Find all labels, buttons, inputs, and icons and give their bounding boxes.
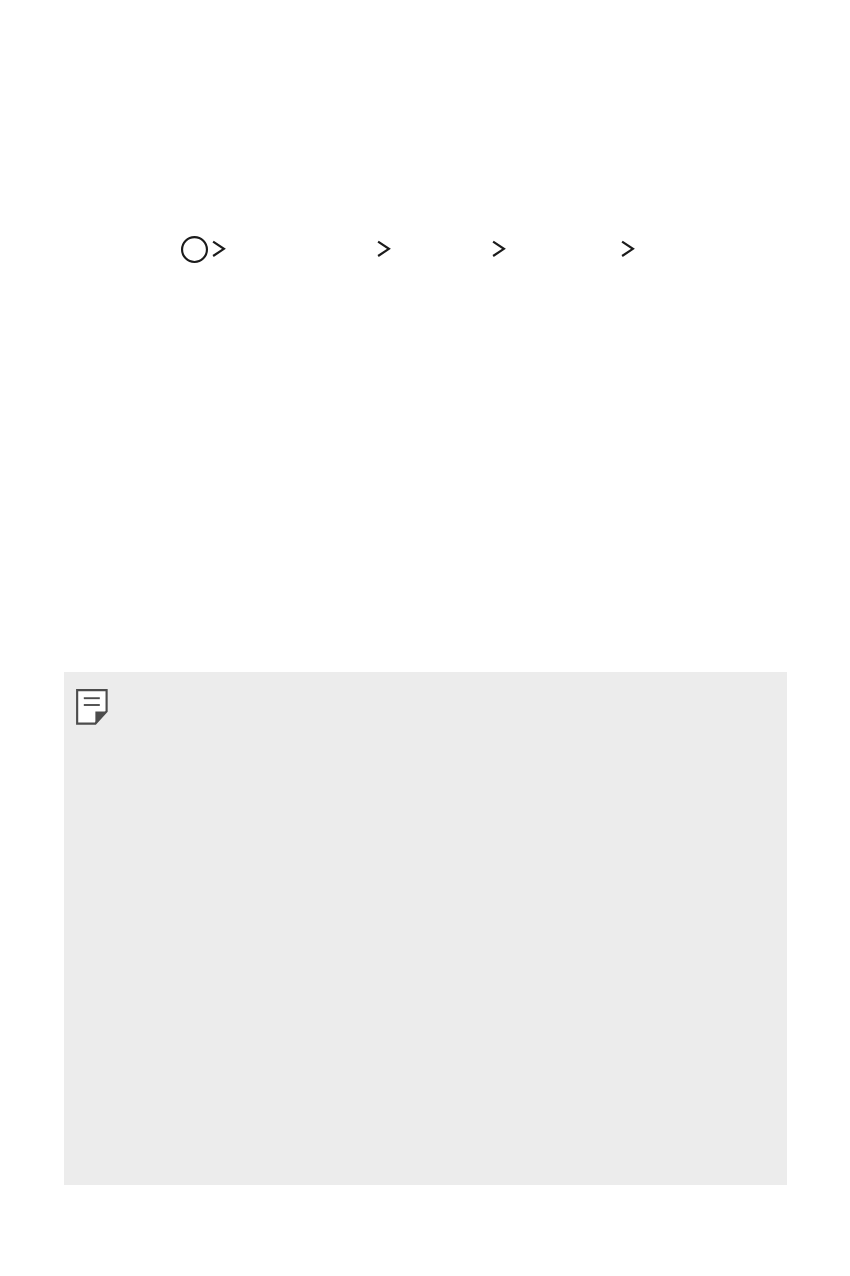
- button[interactable]: Breadcrumb level 1: [212, 240, 226, 258]
- button[interactable]: Breadcrumb level 4: [621, 240, 635, 258]
- button[interactable]: Note: [76, 689, 109, 725]
- button[interactable]: Note: [64, 672, 787, 1185]
- button[interactable]: Breadcrumb level 2: [377, 240, 391, 258]
- button[interactable]: Home: [180, 235, 209, 264]
- button[interactable]: Breadcrumb level 3: [492, 240, 506, 258]
